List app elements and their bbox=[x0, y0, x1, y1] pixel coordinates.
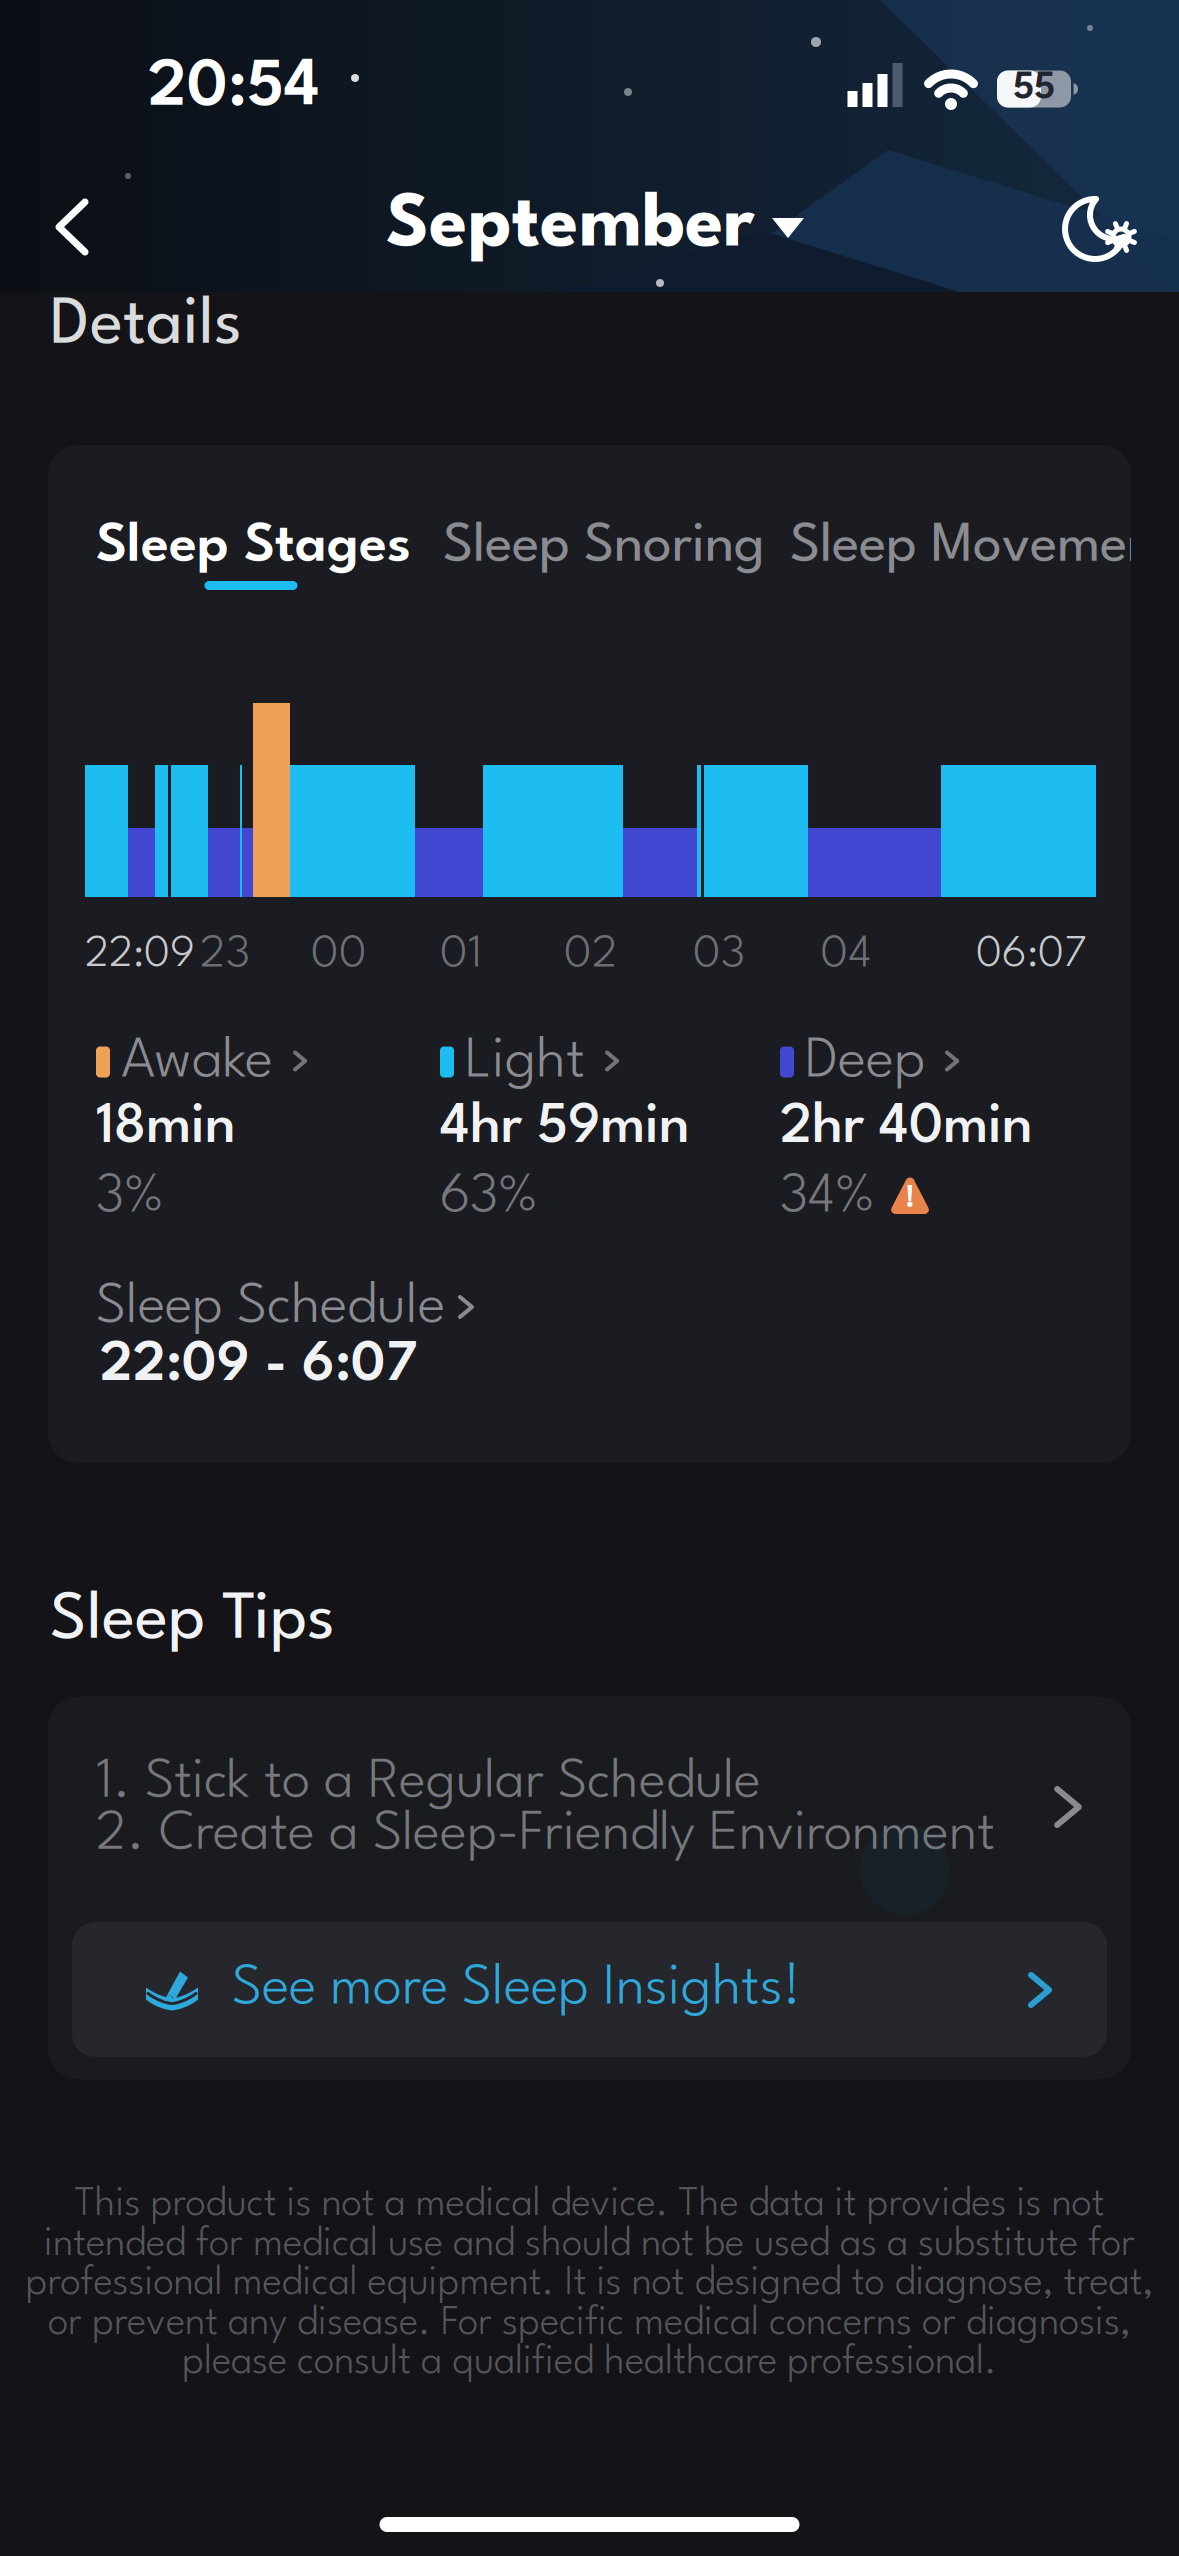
staticText: 34% bbox=[780, 1172, 875, 1224]
button[interactable]: Sleep Schedule bbox=[48, 445, 1131, 1463]
staticText: 20:54 bbox=[148, 56, 320, 120]
staticText: 2. Create a Sleep-Friendly Environment bbox=[96, 1809, 995, 1861]
staticText: 2hr 40min bbox=[780, 1101, 1033, 1155]
staticText: ! bbox=[905, 1184, 915, 1214]
staticText: 1. Stick to a Regular Schedule bbox=[96, 1757, 761, 1809]
staticText: 01 bbox=[440, 933, 482, 977]
staticText: 22:09 bbox=[85, 934, 195, 976]
staticText: 22:09 - 6:07 bbox=[100, 1339, 417, 1393]
button[interactable]: Awake bbox=[48, 445, 1131, 1463]
staticText: This product is not a medical device. Th… bbox=[74, 2186, 1104, 2224]
staticText: 4hr 59min bbox=[440, 1101, 690, 1155]
staticText: Deep bbox=[805, 1034, 925, 1090]
button[interactable]: Light bbox=[48, 445, 1131, 1463]
staticText: Sleep Snoring bbox=[443, 521, 765, 573]
button[interactable]: Sleep settings bbox=[1062, 190, 1138, 264]
staticText: 03 bbox=[693, 933, 745, 977]
staticText: 06:07 bbox=[976, 934, 1087, 976]
staticText: or prevent any disease. For specific med… bbox=[48, 2305, 1131, 2343]
staticText: Light bbox=[465, 1034, 585, 1090]
staticText: Sleep Stages bbox=[96, 521, 411, 573]
staticText: Details bbox=[50, 294, 242, 358]
staticText: September bbox=[386, 191, 755, 262]
staticText: 3% bbox=[96, 1172, 164, 1224]
staticText: 55 bbox=[1013, 71, 1055, 107]
staticText: Sleep Schedule bbox=[96, 1281, 445, 1335]
staticText: 00 bbox=[311, 933, 367, 977]
staticText: intended for medical use and should not … bbox=[44, 2226, 1135, 2264]
button[interactable]: Sleep Stages bbox=[48, 445, 1131, 1463]
button[interactable]: Back bbox=[54, 198, 90, 256]
staticText: 18min bbox=[96, 1101, 236, 1155]
staticText: 02 bbox=[564, 933, 618, 977]
staticText: Sleep Tips bbox=[50, 1589, 335, 1653]
staticText: See more Sleep Insights! bbox=[232, 1962, 801, 2016]
button[interactable]: Sleep Movement bbox=[48, 445, 1131, 1463]
staticText: 04 bbox=[820, 933, 871, 977]
button[interactable]: Deep bbox=[48, 445, 1131, 1463]
staticText: please consult a qualified healthcare pr… bbox=[182, 2344, 997, 2382]
button[interactable]: See more Sleep Insights! bbox=[72, 1922, 1107, 2057]
staticText: Sleep Movement bbox=[790, 521, 1175, 573]
staticText: 63% bbox=[440, 1172, 538, 1224]
button[interactable]: 1. Stick to a Regular Schedule bbox=[48, 1697, 1131, 1922]
button[interactable]: Sleep Snoring bbox=[48, 445, 1131, 1463]
staticText: 23 bbox=[200, 933, 250, 977]
staticText: professional medical equipment. It is no… bbox=[25, 2265, 1153, 2303]
button[interactable]: September bbox=[386, 191, 804, 262]
staticText: Awake bbox=[121, 1034, 273, 1090]
